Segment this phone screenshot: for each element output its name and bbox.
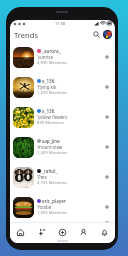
button[interactable]: Notifications — [94, 223, 115, 242]
staticText: 'mount-view — [37, 144, 63, 150]
staticText: x_136 — [42, 78, 55, 84]
staticText: _rahul_ — [42, 168, 58, 174]
staticText: 'Pets — [37, 174, 47, 180]
button[interactable]: eric_player — [10, 192, 115, 222]
staticText: 'flying kik — [37, 84, 57, 90]
staticText: 4,751 Mentions — [37, 180, 68, 186]
button[interactable]: Profile — [103, 30, 112, 39]
button[interactable]: x_136 — [10, 102, 115, 132]
staticText: 1,459 Mentions — [37, 150, 68, 156]
button[interactable]: Profile — [73, 223, 94, 242]
button[interactable]: x_136 — [10, 72, 115, 102]
button[interactable]: _aurora_ — [10, 42, 115, 72]
staticText: 'sunrise — [37, 54, 53, 60]
staticText: 'yellow flowers — [37, 114, 68, 120]
staticText: 4,895 Mentions — [37, 60, 68, 66]
button[interactable]: Home — [10, 223, 31, 242]
button[interactable]: Explore — [31, 223, 52, 242]
button[interactable]: Add — [101, 51, 113, 63]
staticText: Trends — [14, 30, 39, 40]
button[interactable]: Search — [90, 28, 103, 41]
staticText: 11:30 — [55, 21, 66, 26]
button[interactable]: Add — [101, 201, 113, 213]
button[interactable]: sap_jina — [10, 132, 115, 162]
button[interactable]: Add — [101, 141, 113, 153]
button[interactable]: _rahul_ — [10, 162, 115, 192]
button[interactable]: Add — [101, 81, 113, 93]
button[interactable]: Create — [52, 223, 73, 242]
button[interactable]: Add — [101, 111, 113, 123]
button[interactable]: Add — [101, 171, 113, 183]
staticText: 'foodie — [37, 204, 52, 210]
staticText: x_136 — [42, 108, 55, 114]
staticText: 1,993 Mentions — [37, 210, 68, 216]
staticText: 1,259 Mentions — [37, 90, 68, 96]
staticText: sap_jina — [42, 138, 60, 144]
staticText: 890 Mentions — [37, 120, 64, 126]
staticText: eric_player — [42, 198, 66, 204]
staticText: _aurora_ — [42, 48, 61, 54]
